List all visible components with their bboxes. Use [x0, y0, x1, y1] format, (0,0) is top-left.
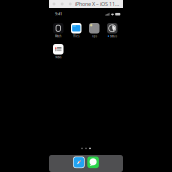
staticText: News: [55, 55, 61, 59]
staticText: Watch: [55, 34, 62, 38]
button[interactable]: News: [53, 44, 63, 59]
staticText: 9:41: [55, 11, 62, 16]
button[interactable]: Messages: [87, 156, 99, 168]
staticText: Status: [110, 34, 117, 38]
button[interactable]: Tips: [89, 23, 99, 38]
button[interactable]: Files: [71, 23, 81, 38]
staticText: Tips: [92, 34, 97, 38]
button[interactable]: Safari: [73, 156, 85, 168]
staticText: Files: [73, 34, 79, 38]
staticText: iPhone X – iOS 11…: [75, 0, 119, 8]
button[interactable]: Watch: [53, 23, 63, 38]
button[interactable]: Status: [107, 23, 117, 38]
